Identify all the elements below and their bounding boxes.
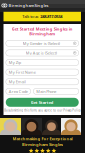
staticText: Area Code (9, 89, 28, 94)
staticText: My Email (9, 79, 26, 84)
staticText: Matchmaking For Exceptional (12, 136, 72, 141)
staticText: My Zip (9, 60, 21, 65)
button[interactable]: Talk to us: (3, 12, 81, 21)
staticText: Get Started Meeting Singles in (12, 26, 73, 32)
staticText: Birmingham (29, 31, 55, 36)
staticText: BirminghamSingles (8, 3, 48, 8)
staticText: By submitting this form, you agree to ou… (4, 109, 80, 112)
staticText: My Gender is (Select) (23, 41, 60, 46)
staticText: Birmingham Singles (22, 142, 63, 147)
staticText: My Age is (Select) (26, 50, 57, 56)
button[interactable]: BirminghamSingles home (0, 1, 85, 9)
staticText: Get Started (31, 100, 54, 105)
staticText: Main Phone (36, 89, 56, 94)
staticText: My First Name (9, 69, 36, 75)
staticText: 248-817-0534 (40, 14, 62, 19)
staticText: Talk to us: (22, 14, 40, 19)
button[interactable]: Get Started (6, 98, 79, 107)
